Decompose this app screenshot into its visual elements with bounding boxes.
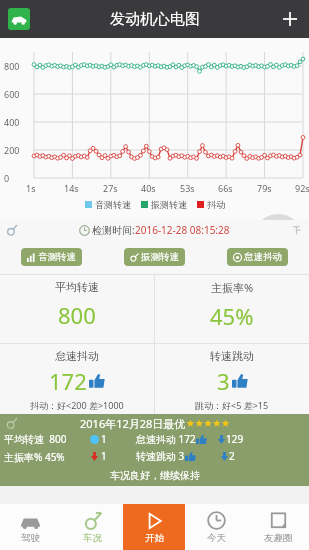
staticText: 2016年12月28日最优 [80, 416, 186, 431]
staticText: 79s [257, 182, 272, 194]
staticText: 129 [226, 432, 244, 446]
staticText: 1 [101, 432, 107, 446]
staticText: 振测转速 [151, 199, 187, 210]
staticText: 怠速抖动 172 [136, 432, 196, 446]
staticText: 开始 [145, 532, 164, 544]
button[interactable]: 怠速抖动 [0, 344, 154, 414]
staticText: 2 [229, 449, 235, 463]
staticText: 音测转速 [95, 199, 131, 210]
staticText: 主振率% [211, 280, 254, 295]
staticText: 友趣圈 [264, 532, 293, 544]
button[interactable]: 音测转速 [21, 248, 82, 266]
staticText: 主振率% 45% [4, 450, 65, 464]
staticText: 800 [58, 300, 96, 330]
staticText: 92s [295, 182, 309, 194]
staticText: 怠速抖动 [244, 251, 282, 263]
button[interactable]: 主振率% [155, 275, 309, 343]
button[interactable]: 友趣圈 [247, 504, 309, 550]
staticText: 抖动 [207, 199, 225, 210]
staticText: 车况良好，继续保持 [110, 469, 200, 482]
staticText: 1 [101, 449, 107, 463]
staticText: 振测转速 [141, 251, 179, 263]
staticText: 跳动：好<5 差>15 [195, 399, 269, 411]
staticText: 27s [103, 182, 118, 194]
staticText: 800 [4, 60, 20, 72]
button[interactable]: 今天 [185, 504, 247, 550]
staticText: 600 [4, 88, 20, 100]
staticText: 怠速抖动 [55, 349, 99, 363]
button[interactable]: Vehicle [8, 8, 30, 30]
button[interactable]: 2016年12月28日最优 [0, 414, 309, 486]
staticText: 3 [217, 366, 230, 396]
staticText: 40s [141, 182, 156, 194]
staticText: 转速跳动 [210, 349, 254, 363]
staticText: 0 [4, 172, 10, 184]
button[interactable]: 怠速抖动 [227, 248, 288, 266]
staticText: 45% [210, 301, 254, 331]
button[interactable]: 驾驶 [0, 504, 61, 550]
staticText: 平均转速 800 [4, 432, 67, 446]
button[interactable]: Add [271, 0, 309, 38]
staticText: 200 [4, 144, 20, 156]
staticText: 驾驶 [21, 532, 40, 544]
button[interactable]: 振测转速 [124, 248, 185, 266]
staticText: 车况 [83, 532, 102, 544]
staticText: 平均转速 [55, 280, 99, 294]
staticText: 发动机心电图 [110, 10, 200, 29]
staticText: 14s [64, 182, 79, 194]
staticText: 转速跳动 3 [136, 449, 185, 463]
button[interactable]: 平均转速 [0, 275, 154, 343]
button[interactable]: 开始 [123, 504, 185, 550]
button[interactable]: 车况 [61, 504, 123, 550]
button[interactable]: 转速跳动 [155, 344, 309, 414]
staticText: 172 [49, 366, 87, 396]
staticText: 400 [4, 116, 20, 128]
staticText: 53s [180, 182, 195, 194]
staticText: 66s [218, 182, 233, 194]
staticText: 今天 [207, 532, 226, 544]
staticText: 检测时间: [92, 223, 135, 237]
staticText: 1s [26, 182, 36, 194]
staticText: 抖动：好<200 差>1000 [30, 399, 124, 411]
staticText: 2016-12-28 08:15:28 [135, 223, 230, 237]
staticText: 音测转速 [38, 251, 76, 263]
